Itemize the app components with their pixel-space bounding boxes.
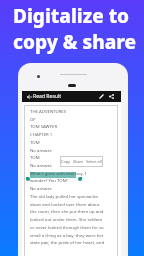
staticText: wonder? You TOM! (30, 177, 68, 183)
staticText: looked out under them. She seldom (30, 216, 103, 222)
button[interactable]: Share (106, 91, 116, 101)
staticText: THE ADVENTURES (30, 108, 67, 114)
button[interactable]: Copy (60, 159, 71, 164)
staticText: down and looked over them about (30, 201, 100, 207)
staticText: TOM SAWYER (30, 123, 58, 129)
button[interactable]: Share (72, 159, 85, 164)
staticText: copy & share (13, 29, 137, 55)
staticText: CHAPTER 1 (30, 131, 53, 137)
staticText: Digitalize to (13, 3, 130, 29)
staticText: the room; then she put them up and (30, 208, 104, 214)
staticText: OF (30, 116, 36, 122)
staticText: TOM (30, 154, 40, 160)
staticText: Read Result (33, 93, 62, 100)
staticText: small a thing as a boy; they were her (30, 232, 104, 238)
staticText: What's gone with that boy, I (30, 170, 87, 176)
button[interactable]: Back (24, 91, 35, 102)
staticText: TOM (30, 139, 40, 145)
button[interactable]: Select all (85, 159, 103, 164)
staticText: or never looked through them for so (30, 224, 104, 230)
staticText: Share (73, 159, 84, 164)
staticText: The old lady pulled her spectacles (30, 193, 98, 199)
staticText: No answer. (30, 185, 53, 191)
staticText: state pair, the pride of her heart, and (30, 239, 105, 245)
staticText: Select all (86, 159, 102, 164)
button[interactable]: Edit (96, 91, 106, 101)
staticText: Copy (61, 159, 70, 164)
staticText: No answer. (30, 162, 53, 168)
staticText: No answer. (30, 147, 53, 153)
